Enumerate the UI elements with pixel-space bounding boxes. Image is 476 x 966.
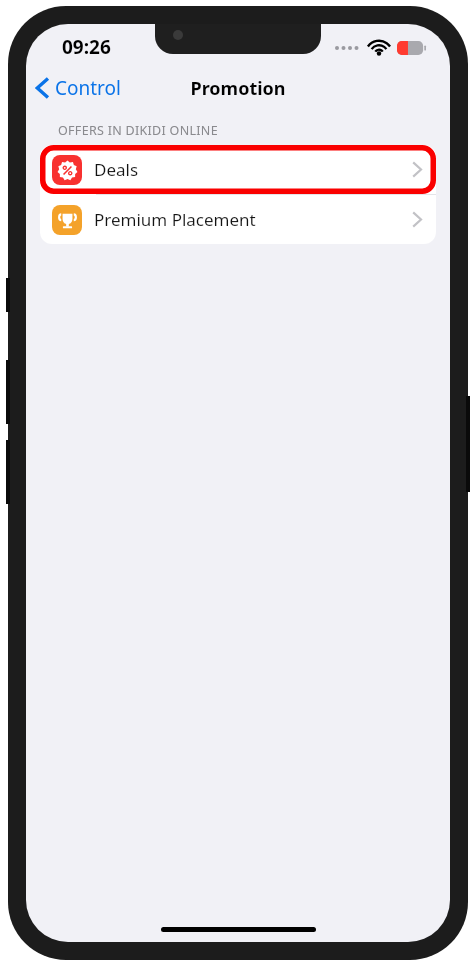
staticText: Premium Placement xyxy=(94,208,256,231)
button[interactable]: Premium Placement xyxy=(40,195,436,244)
button[interactable]: Deals xyxy=(40,145,436,194)
staticText: OFFERS IN DIKIDI ONLINE xyxy=(58,122,218,139)
staticText: Promotion xyxy=(190,76,286,101)
other: Premium Placement xyxy=(52,205,82,235)
staticText: Deals xyxy=(94,158,139,181)
other: Deals xyxy=(52,155,82,185)
button[interactable]: Control xyxy=(26,71,131,105)
staticText: 09:26 xyxy=(62,34,111,60)
staticText: Control xyxy=(55,75,121,101)
